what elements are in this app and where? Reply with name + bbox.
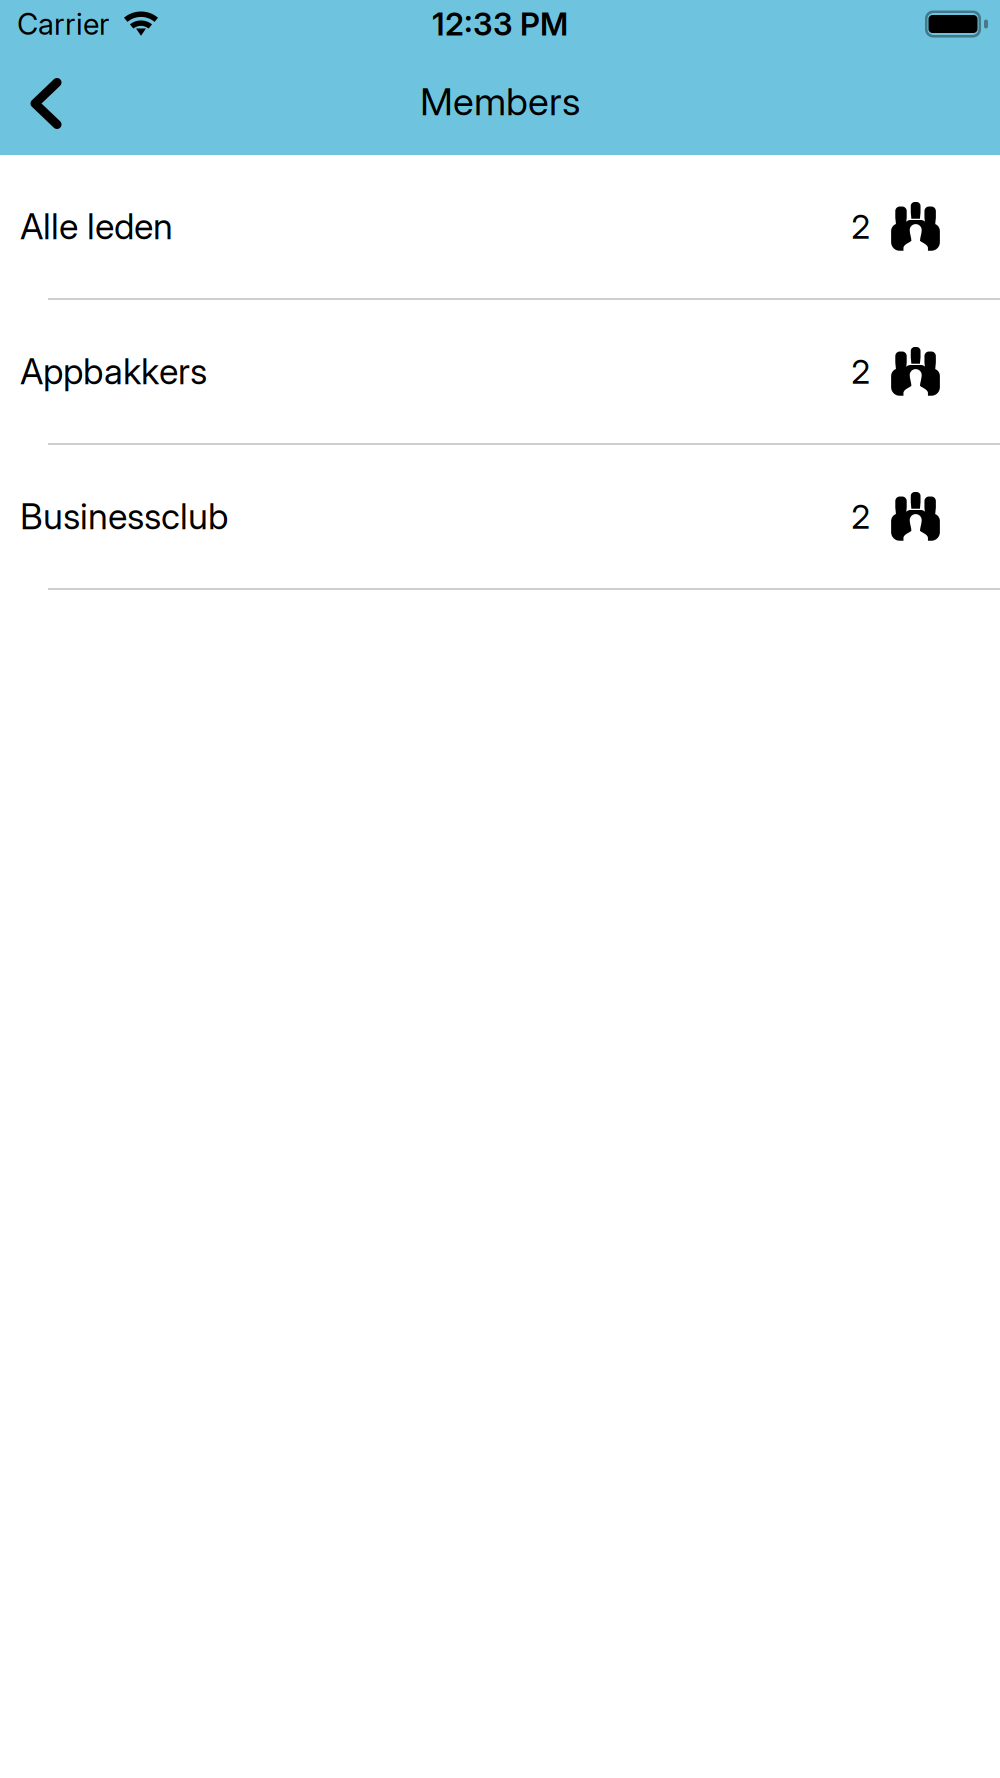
staticText: Alle leden: [20, 205, 173, 248]
staticText: Carrier: [17, 6, 109, 42]
staticText: Members: [420, 78, 580, 124]
staticText: 2: [851, 206, 870, 247]
button[interactable]: Appbakkers: [0, 300, 1000, 445]
button[interactable]: Businessclub: [0, 445, 1000, 590]
staticText: 2: [851, 496, 870, 537]
button[interactable]: Back: [0, 57, 97, 145]
staticText: 12:33 PM: [432, 5, 568, 43]
staticText: 2: [851, 351, 870, 392]
staticText: Appbakkers: [20, 350, 207, 393]
staticText: Businessclub: [20, 495, 228, 538]
button[interactable]: Alle leden: [0, 155, 1000, 300]
